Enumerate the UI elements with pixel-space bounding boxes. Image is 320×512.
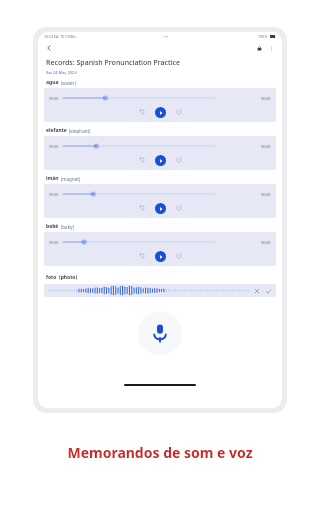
button[interactable]: Forward 10 seconds bbox=[173, 250, 185, 262]
staticText: 00:00 bbox=[261, 96, 271, 101]
button[interactable]: Back bbox=[43, 42, 55, 54]
button[interactable]: Forward 10 seconds bbox=[173, 202, 185, 214]
button[interactable]: 00:00 bbox=[44, 136, 276, 170]
staticText: 00:00 bbox=[49, 96, 59, 101]
staticText: foto (photo) bbox=[46, 274, 78, 281]
button[interactable]: Play bbox=[155, 251, 166, 262]
staticText: 00:00 bbox=[261, 144, 271, 149]
button[interactable]: More options bbox=[265, 42, 277, 54]
staticText: 00:00 bbox=[261, 240, 271, 245]
button[interactable]: Play bbox=[155, 155, 166, 166]
staticText: (baby) bbox=[61, 224, 74, 230]
button[interactable]: Forward 10 seconds bbox=[173, 106, 185, 118]
button[interactable]: Lock bbox=[253, 42, 265, 54]
button[interactable]: Record bbox=[138, 311, 182, 355]
button[interactable]: Save recording bbox=[264, 287, 272, 295]
staticText: 00:00 bbox=[261, 192, 271, 197]
staticText: (elephant) bbox=[69, 128, 91, 134]
button[interactable]: Rewind 10 seconds bbox=[136, 154, 148, 166]
button[interactable]: 00:00 bbox=[44, 88, 276, 122]
staticText: Memorandos de som e voz bbox=[67, 443, 253, 462]
staticText: 00:00 bbox=[49, 240, 59, 245]
button[interactable]: 00:00 bbox=[44, 184, 276, 218]
button[interactable]: Play bbox=[155, 203, 166, 214]
staticText: imán bbox=[46, 175, 59, 182]
staticText: 100% bbox=[258, 34, 268, 39]
button[interactable]: Forward 10 seconds bbox=[173, 154, 185, 166]
staticText: (water) bbox=[61, 80, 76, 86]
staticText: 10:52 EA 70.7 KB/s bbox=[44, 34, 76, 39]
staticText: 00:00 bbox=[49, 144, 59, 149]
staticText: bebé bbox=[46, 223, 59, 230]
button[interactable]: Rewind 10 seconds bbox=[136, 202, 148, 214]
staticText: ••• bbox=[164, 34, 169, 39]
staticText: elefante bbox=[46, 127, 67, 134]
button[interactable]: Rewind 10 seconds bbox=[136, 250, 148, 262]
staticText: agua bbox=[46, 79, 59, 86]
staticText: (magnet) bbox=[61, 176, 81, 182]
staticText: 00:00 bbox=[49, 192, 59, 197]
button[interactable]: 00:00 bbox=[44, 232, 276, 266]
button[interactable]: Play bbox=[155, 107, 166, 118]
button[interactable]: Rewind 10 seconds bbox=[136, 106, 148, 118]
staticText: Sat 24 Mar, 2023 bbox=[46, 70, 77, 75]
staticText: Records: Spanish Pronunciation Practice bbox=[46, 58, 181, 68]
button[interactable]: Cancel recording bbox=[253, 287, 261, 295]
